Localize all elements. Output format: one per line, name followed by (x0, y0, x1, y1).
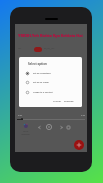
button[interactable]: Set as a Ringtone (19, 69, 82, 77)
button[interactable]: CANCEL (53, 100, 62, 103)
staticText: YRKKH-Yeh Rishta Kya Kehlata Hai (18, 33, 83, 38)
button[interactable]: Assign to a Contact (19, 88, 82, 96)
button[interactable]: Previous (35, 123, 43, 131)
staticText: 0:00 (18, 114, 22, 117)
button[interactable]: Next (57, 123, 65, 131)
staticText: Select option (28, 62, 47, 66)
button[interactable]: Play (45, 123, 53, 131)
staticText: PROCEED (64, 100, 74, 103)
staticText: Assign to a Contact (33, 91, 53, 94)
staticText: CANCEL (53, 100, 62, 103)
button[interactable]: Set as an Alarm (19, 78, 82, 86)
button[interactable]: Add to favourites (74, 140, 84, 150)
staticText: 2:38 (81, 114, 85, 117)
staticText: YRKKH-Yeh Rishta Kya Kehlata Hai (18, 33, 83, 38)
button[interactable]: Repeat (64, 123, 72, 131)
button[interactable]: PROCEED (64, 100, 74, 103)
staticText: Set as a Ringtone (33, 72, 51, 75)
staticText: Set as an Alarm (33, 81, 49, 84)
